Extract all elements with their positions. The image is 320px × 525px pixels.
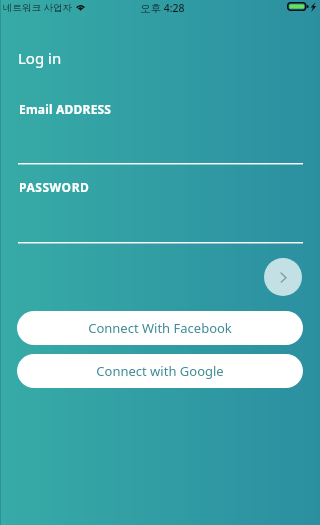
staticText: Connect with Google [96,362,224,380]
staticText: 오후 4:28 [140,1,185,15]
button[interactable]: Connect With Facebook [17,311,303,345]
button[interactable]: Connect with Google [17,354,303,388]
staticText: 네트워크 사업자 [3,1,72,14]
staticText: Connect With Facebook [88,319,232,337]
staticText: Email ADDRESS [19,101,112,117]
staticText: Log in [18,48,62,68]
button[interactable]: Next [264,258,302,296]
staticText: PASSWORD [19,179,90,195]
